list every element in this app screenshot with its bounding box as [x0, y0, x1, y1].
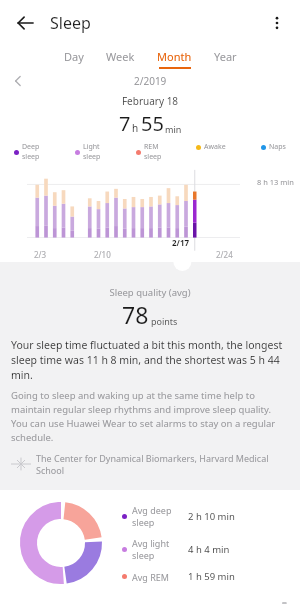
staticText: Avg deep: [132, 504, 172, 516]
staticText: Deep: [22, 142, 40, 152]
staticText: 8 h 13 min: [257, 177, 294, 187]
staticText: Your sleep time fluctuated a bit this mo…: [11, 338, 289, 382]
button[interactable]: More options: [260, 6, 294, 40]
staticText: sleep: [132, 516, 155, 528]
staticText: points: [151, 315, 178, 327]
staticText: 1 h 59 min: [188, 570, 235, 583]
button[interactable]: Day: [64, 49, 84, 69]
button[interactable]: Week: [106, 49, 135, 69]
staticText: Week: [106, 49, 135, 64]
staticText: sleep: [144, 152, 162, 162]
staticText: Avg REM: [132, 571, 169, 583]
staticText: 2 h 10 min: [188, 510, 235, 523]
button[interactable]: Previous month: [8, 72, 28, 90]
button[interactable]: Back: [8, 6, 42, 40]
staticText: sleep: [83, 152, 101, 162]
staticText: sleep: [132, 549, 155, 561]
staticText: 55: [141, 110, 164, 137]
staticText: Light: [83, 142, 100, 152]
staticText: h: [132, 121, 139, 135]
staticText: Year: [214, 49, 237, 64]
button[interactable]: Month: [157, 49, 192, 69]
staticText: Going to sleep and waking up at the same…: [11, 389, 289, 444]
staticText: The Center for Dynamical Biomarkers, Har…: [36, 452, 289, 476]
staticText: 2/17: [172, 237, 190, 248]
staticText: Sleep: [50, 12, 91, 34]
staticText: February 18: [0, 94, 300, 108]
staticText: REM: [144, 142, 159, 152]
staticText: 7: [119, 110, 131, 137]
button[interactable]: Year: [214, 49, 237, 69]
staticText: Sleep quality (avg): [0, 286, 300, 299]
staticText: min: [165, 123, 182, 135]
staticText: 4 h 4 min: [188, 543, 230, 556]
staticText: 2/3: [34, 249, 47, 260]
staticText: Avg light: [132, 537, 170, 549]
staticText: Month: [157, 49, 192, 64]
staticText: 2/24: [216, 249, 233, 260]
staticText: Naps: [269, 142, 286, 152]
staticText: 2/2019: [134, 74, 167, 88]
staticText: Awake: [204, 142, 226, 152]
staticText: sleep: [22, 152, 40, 162]
staticText: 78: [122, 299, 149, 330]
staticText: 2/10: [94, 249, 111, 260]
staticText: Day: [64, 49, 84, 64]
